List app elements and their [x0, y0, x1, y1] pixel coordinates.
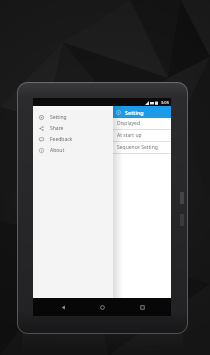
button[interactable]: Settings: [113, 106, 171, 118]
button[interactable]: About: [33, 145, 113, 156]
staticText: At start up: [117, 132, 142, 139]
other: Settings: [116, 110, 121, 115]
button[interactable]: Recent apps: [132, 298, 152, 316]
staticText: Sequence Setting: [117, 144, 158, 151]
staticText: Setting: [125, 109, 144, 116]
button[interactable]: Displayed: [113, 118, 171, 130]
staticText: About: [50, 147, 65, 154]
button[interactable]: Share: [33, 123, 113, 134]
button[interactable]: Home: [92, 298, 112, 316]
button[interactable]: Setting: [33, 112, 113, 123]
staticText: Setting: [50, 114, 67, 121]
staticText: Feedback: [50, 136, 73, 143]
button[interactable]: Sequence Setting: [113, 142, 171, 154]
button[interactable]: Back: [53, 298, 73, 316]
staticText: Displayed: [117, 120, 140, 127]
button[interactable]: At start up: [113, 130, 171, 142]
staticText: 3:05: [161, 100, 169, 105]
button[interactable]: Feedback: [33, 134, 113, 145]
staticText: Share: [50, 125, 64, 132]
